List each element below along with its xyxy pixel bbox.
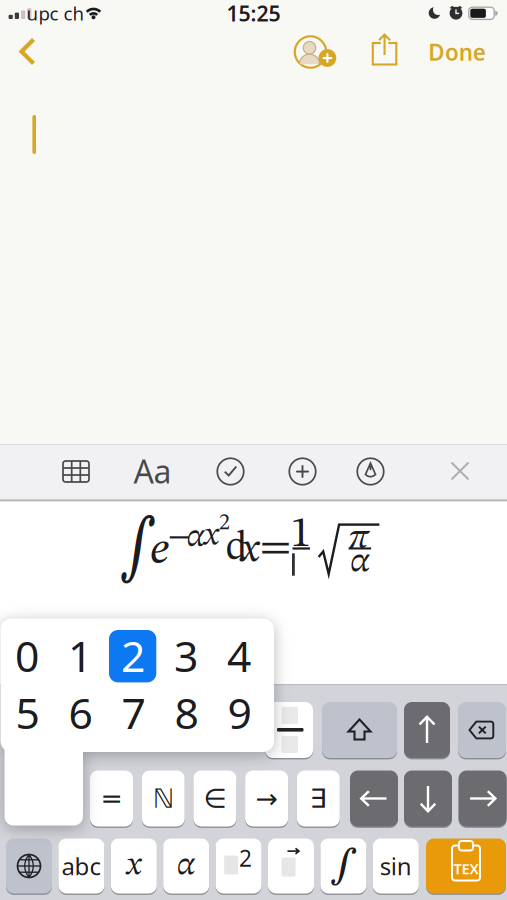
staticText: 1 [290, 514, 311, 556]
staticText: 𝛼 [177, 850, 196, 882]
button[interactable] [404, 770, 452, 826]
staticText: 8 [174, 684, 198, 741]
staticText: Done [426, 36, 488, 67]
button[interactable] [216, 457, 244, 485]
button[interactable]: ∃ [297, 770, 340, 826]
staticText: − [168, 521, 191, 553]
button[interactable] [350, 770, 398, 826]
button[interactable]: 𝛼 [163, 838, 209, 893]
button[interactable] [450, 461, 470, 481]
button[interactable] [404, 702, 450, 758]
button[interactable]: 𝑥 [111, 838, 157, 893]
button[interactable]: TEX [426, 838, 506, 893]
button[interactable] [6, 838, 52, 893]
button[interactable]: 2 [216, 838, 262, 893]
button[interactable] [265, 702, 313, 758]
staticText: 𝛼 [350, 545, 370, 580]
button[interactable]: Aa [133, 450, 171, 492]
staticText: 𝜋 [348, 522, 370, 556]
staticText: 𝑥 [202, 520, 220, 552]
staticText: ∃ [310, 783, 327, 814]
staticText: 7 [121, 684, 145, 741]
staticText: abc [61, 850, 101, 882]
button[interactable]: ∈ [193, 770, 236, 826]
button[interactable] [5, 37, 49, 66]
button[interactable]: = [90, 770, 133, 826]
staticText: 5 [15, 684, 39, 741]
staticText: ∈ [203, 783, 226, 814]
staticText: 𝑥 [125, 850, 143, 882]
staticText: TEX [453, 859, 478, 878]
button[interactable]: ∫ [320, 838, 366, 893]
staticText: 2 [219, 512, 230, 535]
staticText: Aa [133, 450, 171, 492]
button[interactable] [458, 702, 506, 758]
staticText: ℕ [153, 783, 174, 814]
button[interactable] [459, 770, 507, 826]
button[interactable] [268, 838, 314, 893]
staticText: 4 [227, 627, 251, 684]
staticText: 2 [121, 627, 145, 684]
button[interactable]: sin [373, 838, 419, 893]
staticText: 9 [227, 684, 251, 741]
staticText: = [100, 783, 122, 814]
button[interactable]: → [245, 770, 288, 826]
button[interactable] [369, 33, 401, 67]
staticText: d [226, 529, 248, 569]
staticText: 𝛼 [186, 522, 205, 554]
button[interactable] [288, 457, 316, 485]
staticText: 0 [15, 627, 39, 684]
staticText: 𝑥 [239, 531, 261, 571]
staticText: ∫ [113, 512, 162, 584]
button[interactable]: ℕ [142, 770, 185, 826]
staticText: 15:25 [226, 0, 280, 27]
staticText: sin [380, 850, 412, 882]
button[interactable] [288, 32, 332, 72]
staticText: = [261, 529, 289, 568]
button[interactable]: abc [58, 838, 104, 893]
button[interactable] [62, 458, 90, 484]
staticText: 𝑒 [150, 528, 169, 573]
staticText: upc ch [26, 1, 84, 26]
staticText: 3 [174, 627, 198, 684]
button[interactable] [322, 702, 397, 758]
staticText: 6 [68, 684, 92, 741]
staticText: 1 [68, 627, 92, 684]
button[interactable]: Done [426, 36, 488, 67]
staticText: ∫ [330, 846, 357, 886]
staticText: → [256, 783, 278, 814]
staticText: 2 [239, 843, 252, 873]
button[interactable] [356, 457, 384, 485]
